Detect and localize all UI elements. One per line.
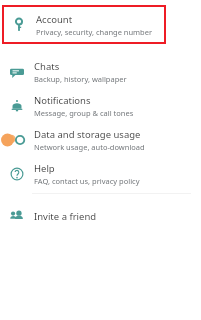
staticText: Backup, history, wallpaper <box>34 74 127 84</box>
staticText: Account <box>36 13 73 26</box>
other: Account <box>12 18 26 32</box>
staticText: Help <box>34 162 55 175</box>
staticText: Notifications <box>34 94 91 107</box>
button[interactable]: Invite a friend <box>0 203 201 229</box>
other: Notifications <box>10 99 24 113</box>
staticText: Data and storage usage <box>34 128 141 141</box>
staticText: FAQ, contact us, privacy policy <box>34 176 140 186</box>
staticText: Privacy, security, change number <box>36 27 153 37</box>
button[interactable]: Help <box>0 157 201 191</box>
other: Help <box>10 167 24 181</box>
other: Invite a friend <box>10 209 24 223</box>
staticText: Chats <box>34 60 60 73</box>
button[interactable]: Chats <box>0 55 201 89</box>
other: Data and storage usage <box>10 133 24 147</box>
staticText: Network usage, auto-download <box>34 142 145 152</box>
button[interactable]: Notifications <box>0 89 201 123</box>
button[interactable]: Account <box>2 5 166 44</box>
staticText: Message, group & call tones <box>34 108 134 118</box>
staticText: Invite a friend <box>34 210 97 223</box>
other: Chats <box>10 65 24 79</box>
button[interactable]: Data and storage usage <box>0 123 201 157</box>
